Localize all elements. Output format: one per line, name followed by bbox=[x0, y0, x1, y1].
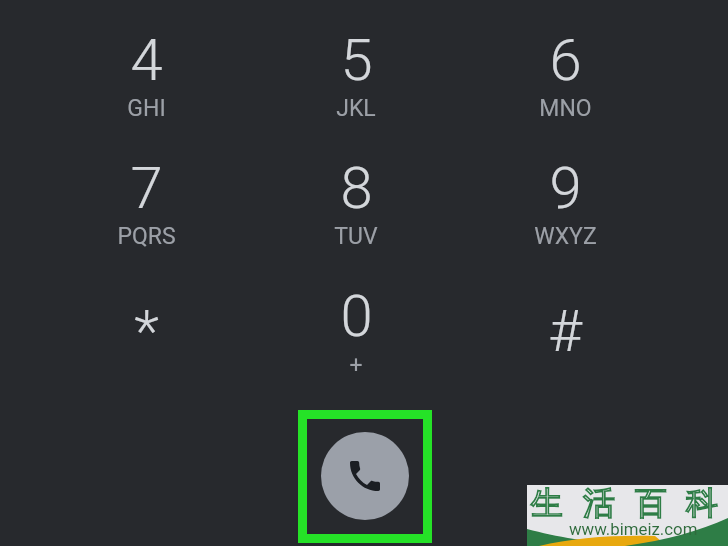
staticText: 8 bbox=[340, 154, 373, 222]
staticText: JKL bbox=[336, 95, 376, 122]
staticText: 活 bbox=[583, 483, 615, 523]
button[interactable]: # bbox=[475, 284, 675, 402]
staticText: 6 bbox=[549, 26, 582, 94]
staticText: * bbox=[134, 297, 159, 365]
staticText: 生 bbox=[531, 483, 563, 523]
staticText: MNO bbox=[539, 95, 592, 122]
button[interactable]: 9 WXYZ bbox=[475, 141, 675, 259]
staticText: 4 bbox=[130, 26, 163, 94]
button[interactable]: 5 JKL bbox=[266, 13, 466, 131]
staticText: # bbox=[548, 297, 582, 365]
button[interactable]: * bbox=[56, 284, 256, 402]
button[interactable]: 8 TUV bbox=[266, 141, 466, 259]
button[interactable]: 4 GHI bbox=[56, 13, 256, 131]
staticText: 科 bbox=[686, 483, 718, 523]
button[interactable]: 0 + bbox=[266, 269, 466, 387]
staticText: 0 bbox=[340, 282, 373, 350]
staticText: 7 bbox=[130, 154, 163, 222]
button[interactable]: Call bbox=[321, 432, 409, 520]
staticText: PQRS bbox=[117, 223, 176, 250]
staticText: + bbox=[349, 352, 363, 379]
button[interactable]: 7 PQRS bbox=[56, 141, 256, 259]
staticText: TUV bbox=[334, 223, 378, 250]
staticText: www.bimeiz.com bbox=[569, 519, 698, 539]
staticText: 9 bbox=[549, 154, 582, 222]
button[interactable]: 6 MNO bbox=[475, 13, 675, 131]
staticText: 5 bbox=[340, 26, 373, 94]
staticText: 百 bbox=[635, 483, 667, 523]
staticText: GHI bbox=[127, 95, 166, 122]
staticText: WXYZ bbox=[534, 223, 597, 250]
